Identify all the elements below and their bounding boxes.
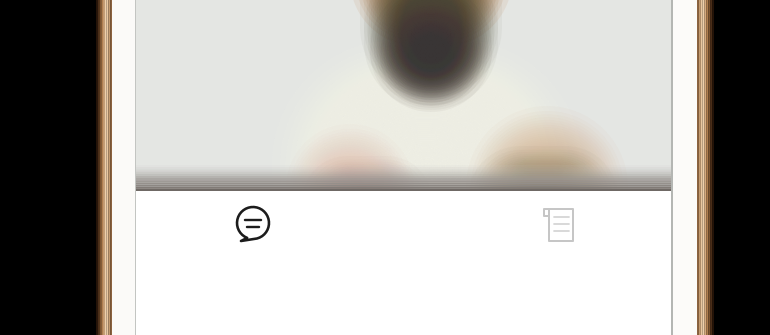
button[interactable]: Transcript — [537, 203, 583, 249]
button[interactable]: Comments — [230, 203, 276, 249]
